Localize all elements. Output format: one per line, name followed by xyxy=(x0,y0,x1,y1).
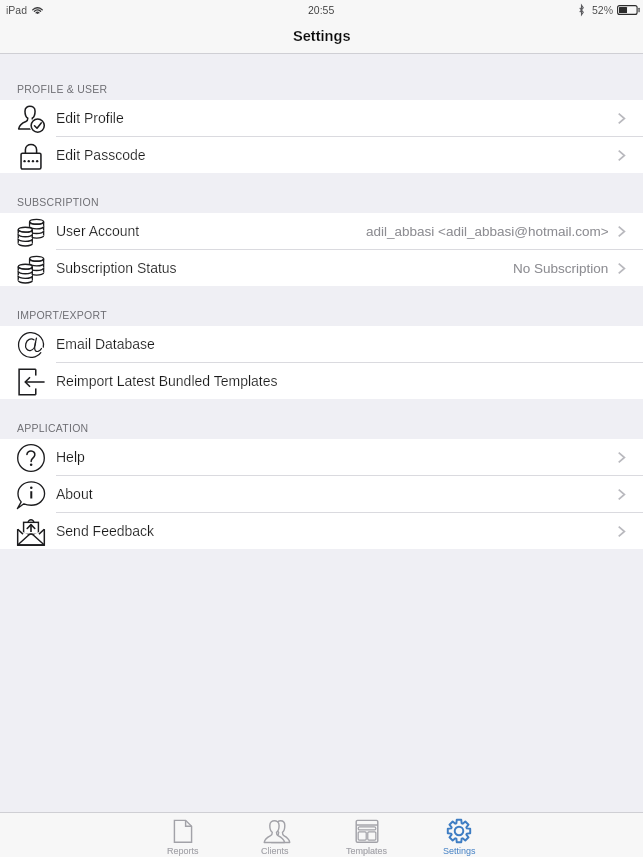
staticText: Clients xyxy=(261,846,289,856)
staticText: Edit Passcode xyxy=(56,147,146,163)
staticText: Reimport Latest Bundled Templates xyxy=(56,373,278,389)
staticText: Reports xyxy=(167,846,199,856)
button[interactable]: Settings xyxy=(413,816,505,857)
staticText: Settings xyxy=(443,846,476,856)
staticText: Help xyxy=(56,449,85,465)
staticText: Settings xyxy=(293,28,351,44)
staticText: iPad xyxy=(6,4,28,16)
staticText: About xyxy=(56,486,93,502)
button[interactable]: User Account xyxy=(0,213,643,249)
staticText: 52% xyxy=(592,4,614,16)
button[interactable]: Email Database xyxy=(0,326,643,362)
button[interactable]: Send Feedback xyxy=(0,513,643,549)
staticText: User Account xyxy=(56,223,140,239)
staticText: adil_abbasi <adil_abbasi@hotmail.com> xyxy=(366,224,609,239)
button[interactable]: Clients xyxy=(229,816,321,857)
staticText: No Subscription xyxy=(513,261,609,276)
staticText: Templates xyxy=(346,846,388,856)
button[interactable]: Help xyxy=(0,439,643,475)
button[interactable]: Reimport Latest Bundled Templates xyxy=(0,363,643,399)
staticText: 20:55 xyxy=(308,4,335,16)
button[interactable]: About xyxy=(0,476,643,512)
button[interactable]: Reports xyxy=(137,816,229,857)
staticText: SUBSCRIPTION xyxy=(17,196,99,208)
staticText: PROFILE & USER xyxy=(17,83,108,95)
staticText: Subscription Status xyxy=(56,260,177,276)
button[interactable]: Edit Profile xyxy=(0,100,643,136)
staticText: Edit Profile xyxy=(56,110,124,126)
staticText: Send Feedback xyxy=(56,523,155,539)
button[interactable]: Subscription Status xyxy=(0,250,643,286)
button[interactable]: Edit Passcode xyxy=(0,137,643,173)
staticText: APPLICATION xyxy=(17,422,89,434)
staticText: IMPORT/EXPORT xyxy=(17,309,107,321)
staticText: Email Database xyxy=(56,336,155,352)
button[interactable]: Templates xyxy=(321,816,413,857)
